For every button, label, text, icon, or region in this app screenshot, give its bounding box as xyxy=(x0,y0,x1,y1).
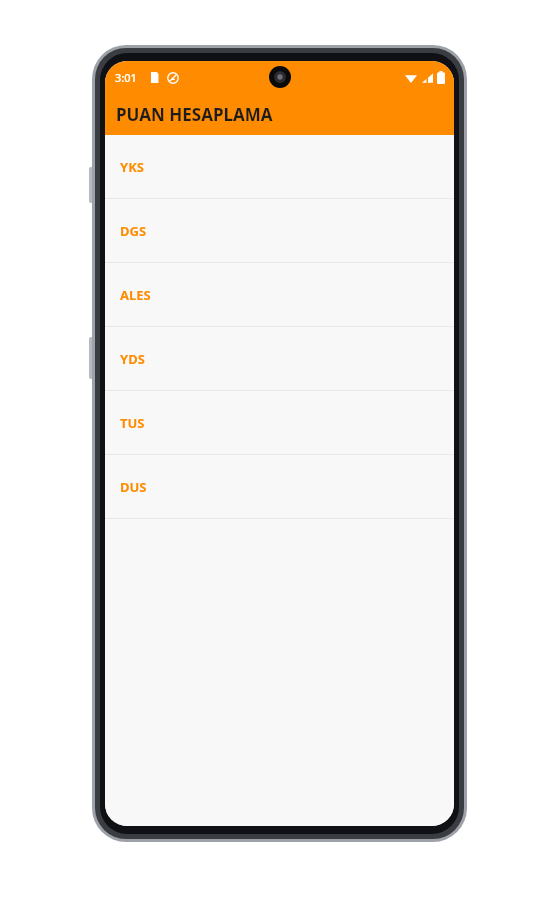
button[interactable]: YKS xyxy=(105,135,454,199)
staticText: YKS xyxy=(120,158,144,176)
staticText: PUAN HESAPLAMA xyxy=(116,103,273,126)
staticText: DUS xyxy=(120,478,147,496)
button[interactable]: DUS xyxy=(105,455,454,519)
staticText: YDS xyxy=(120,350,145,368)
staticText: ALES xyxy=(120,286,151,304)
staticText: TUS xyxy=(120,414,145,432)
button[interactable]: TUS xyxy=(105,391,454,455)
button[interactable]: DGS xyxy=(105,199,454,263)
staticText: 3:01 xyxy=(115,70,137,85)
button[interactable]: ALES xyxy=(105,263,454,327)
staticText: DGS xyxy=(120,222,147,240)
button[interactable]: YDS xyxy=(105,327,454,391)
